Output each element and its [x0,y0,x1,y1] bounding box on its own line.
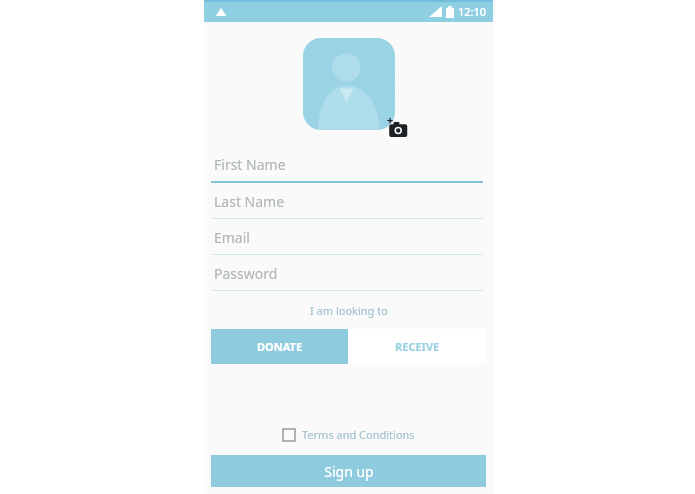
button[interactable]: RECEIVE [348,329,486,364]
button[interactable]: Sign up [211,455,486,487]
button[interactable]: Terms and Conditions [204,427,493,442]
button[interactable]: Add photo [387,118,409,140]
staticText: Sign up [324,462,374,481]
button[interactable]: Last Name [211,183,483,219]
button[interactable]: First Name [211,147,483,183]
staticText: Password [214,264,278,283]
button[interactable]: Email [211,219,483,255]
staticText: I am looking to [310,303,388,318]
staticText: Terms and Conditions [302,427,415,442]
staticText: Email [214,228,250,247]
staticText: RECEIVE [395,339,440,354]
staticText: 12:10 [458,4,487,19]
button[interactable]: Profile photo [303,38,395,130]
staticText: First Name [214,155,286,174]
staticText: DONATE [257,339,303,354]
button[interactable]: DONATE [211,329,348,364]
button[interactable]: Password [211,255,483,291]
staticText: Last Name [214,192,285,211]
